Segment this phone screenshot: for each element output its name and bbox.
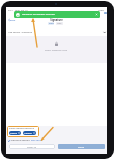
button[interactable]: Patient: [9, 131, 21, 135]
staticText: Back: [10, 18, 16, 21]
button[interactable]: Done: [58, 144, 105, 149]
button[interactable]: Dismiss: [95, 13, 98, 16]
staticText: Mon Jan 12: [15, 8, 28, 11]
button[interactable]: Draw: [48, 22, 54, 25]
staticText: with Terms: [31, 139, 43, 142]
staticText: Clear All: [27, 145, 37, 148]
staticText: Signature appears: [11, 139, 31, 142]
button[interactable]: Expand: [103, 31, 106, 34]
staticText: Signature successfully attached: [22, 13, 55, 16]
staticText: Select Signature Type: [45, 49, 68, 52]
staticText: Done: [78, 145, 85, 148]
button[interactable]: Signature successfully attached: [14, 11, 100, 18]
staticText: Type: [57, 22, 62, 25]
button[interactable]: Type: [56, 22, 63, 25]
staticText: 9:41: [8, 8, 13, 11]
button[interactable]: Clear All: [9, 144, 55, 149]
staticText: Draw: [49, 22, 54, 25]
staticText: 100%: [98, 8, 105, 11]
staticText: Add Section / Signature: [8, 31, 33, 34]
staticText: Witness: [24, 132, 32, 135]
staticText: Patient: [10, 132, 17, 135]
staticText: Signature: [6, 18, 107, 22]
button[interactable]: Back: [7, 18, 17, 21]
button[interactable]: Checked: [8, 139, 43, 142]
button[interactable]: Witness: [23, 131, 36, 135]
staticText: Saved Checked Signature: [9, 127, 34, 130]
other: Checked: [8, 140, 10, 142]
